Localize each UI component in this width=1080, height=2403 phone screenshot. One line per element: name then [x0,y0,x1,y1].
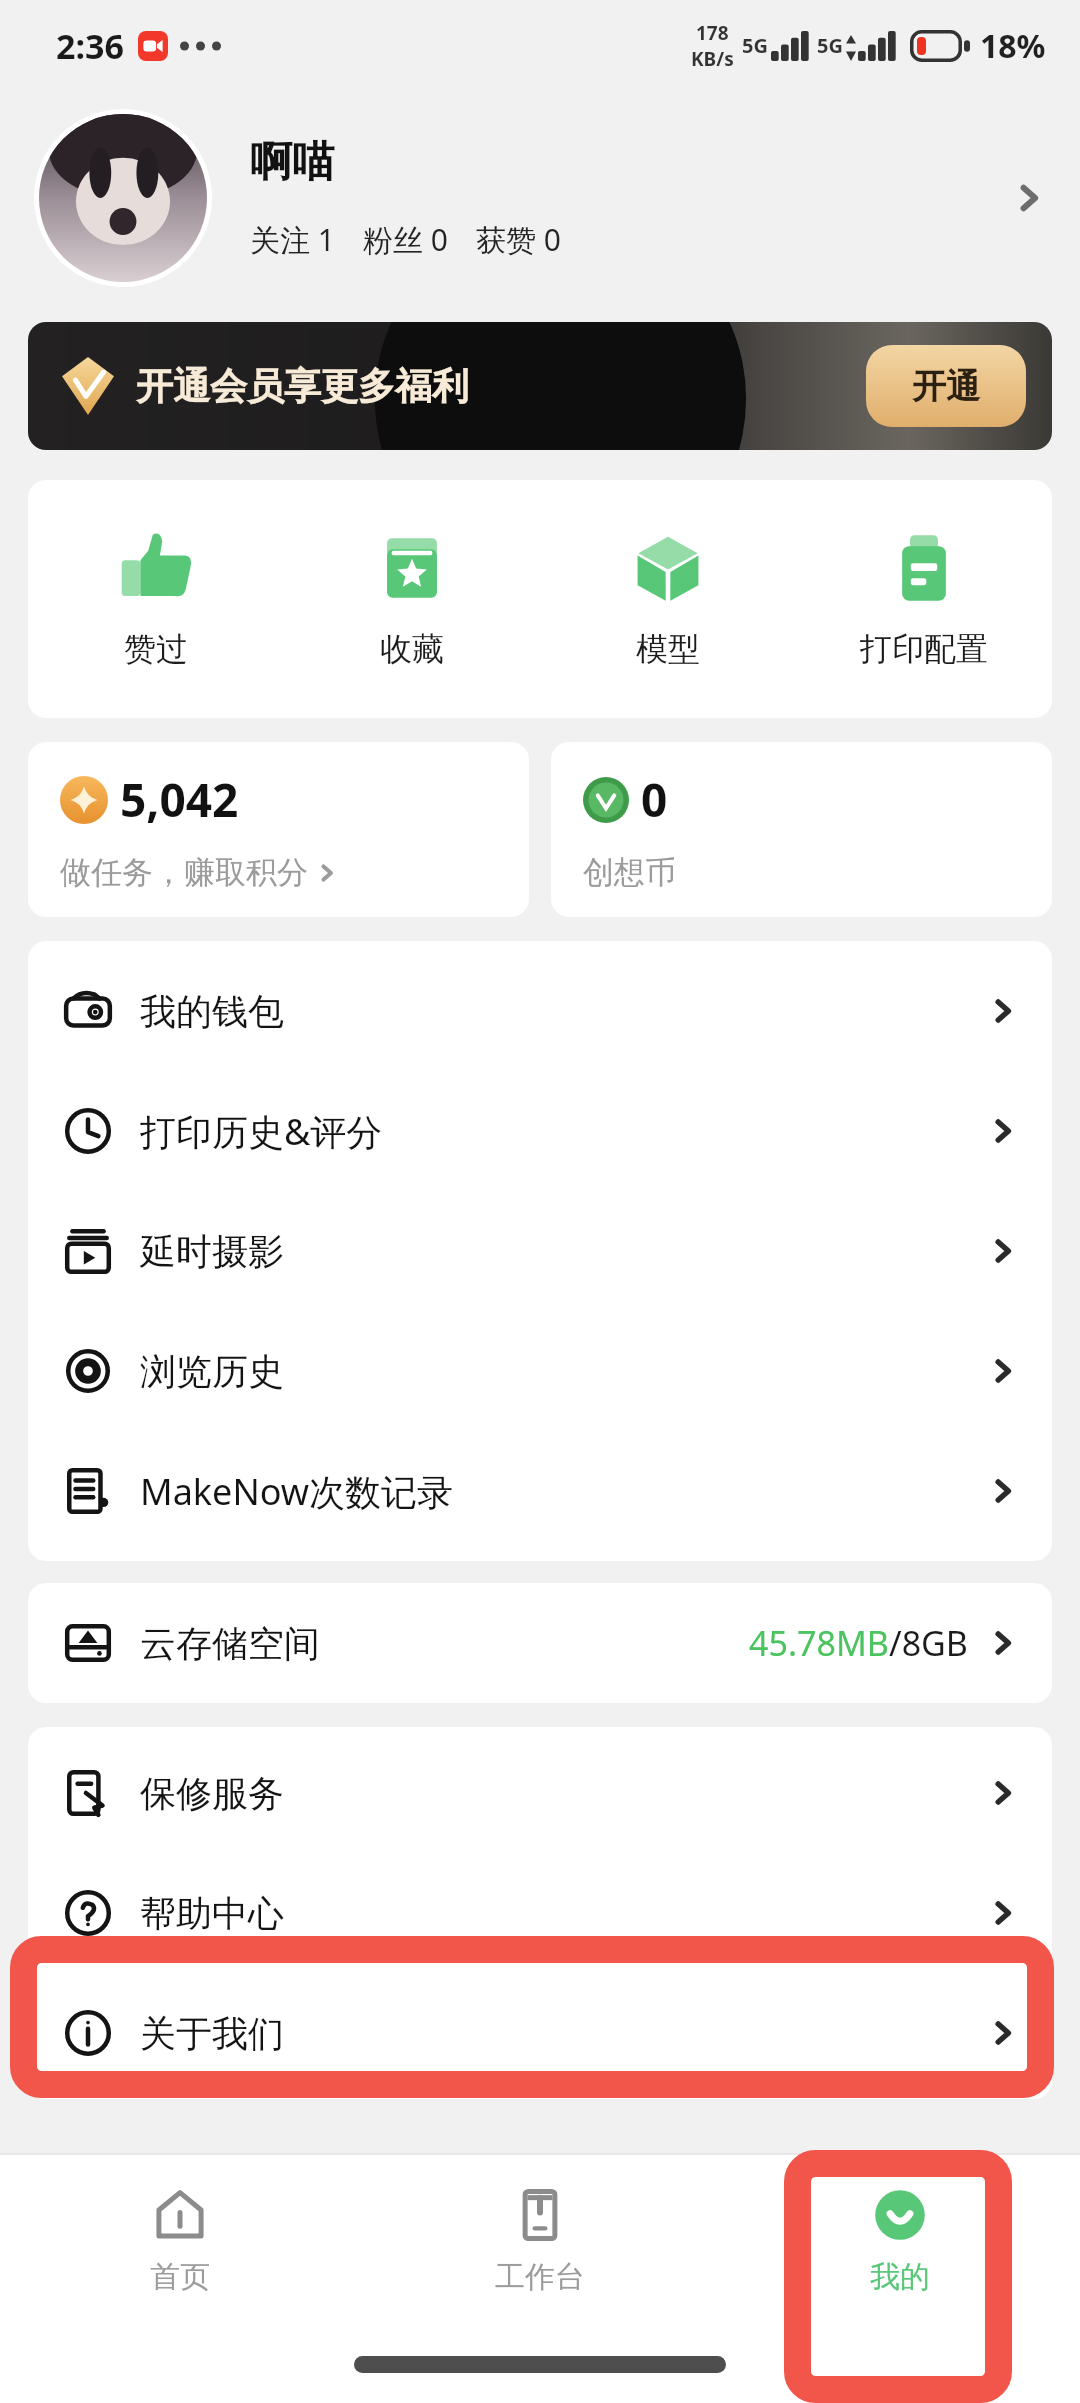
staticText: 我的 [870,2258,930,2296]
button[interactable]: 我的 [720,2155,1080,2325]
button[interactable]: 我的钱包 [28,951,1052,1071]
staticText: 5G [817,32,843,59]
button[interactable]: 0 [551,742,1052,917]
staticText: 178 [696,20,729,46]
button[interactable]: 帮助中心 [28,1853,1052,1973]
staticText: 45.78MB [749,1620,889,1666]
staticText: 工作台 [495,2258,585,2296]
staticText: MakeNow次数记录 [140,1467,454,1516]
staticText: 延时摄影 [140,1229,284,1274]
staticText: 首页 [150,2258,210,2296]
button[interactable]: 5,042 [28,742,529,917]
button[interactable]: 赞过 [28,480,284,718]
staticText: 打印配置 [860,629,988,669]
staticText: 5,042 [120,768,239,831]
staticText: 粉丝 0 [363,219,448,260]
staticText: 关注 1 [250,219,335,260]
button[interactable]: 开通 [866,345,1026,427]
button[interactable]: 收藏 [284,480,540,718]
staticText: 18% [980,24,1046,68]
button[interactable]: 延时摄影 [28,1191,1052,1311]
button[interactable]: 云存储空间 [28,1583,1052,1703]
staticText: /8GB [889,1620,968,1666]
staticText: 啊喵 [250,136,334,189]
staticText: 2:36 [56,23,124,69]
staticText: 云存储空间 [140,1621,320,1666]
staticText: 创想币 [583,853,676,892]
staticText: 打印历史&评分 [140,1107,383,1156]
staticText: 浏览历史 [140,1349,284,1394]
staticText: 开通 [912,365,980,408]
staticText: 收藏 [380,629,444,669]
staticText: 赞过 [124,629,188,669]
button[interactable]: 工作台 [360,2155,720,2325]
button[interactable]: 模型 [540,480,796,718]
button[interactable]: 浏览历史 [28,1311,1052,1431]
staticText: 保修服务 [140,1771,284,1816]
staticText: 获赞 0 [476,219,561,260]
staticText: 帮助中心 [140,1891,284,1936]
staticText: 开通会员享更多福利 [136,363,469,410]
button[interactable]: 打印配置 [796,480,1052,718]
staticText: KB/s [691,46,734,72]
staticText: 关于我们 [140,2011,284,2056]
button[interactable]: 首页 [0,2155,360,2325]
button[interactable]: 打印历史&评分 [28,1071,1052,1191]
staticText: 做任务，赚取积分 [60,853,308,892]
staticText: 模型 [636,629,700,669]
staticText: 0 [641,768,668,831]
staticText: 我的钱包 [140,989,284,1034]
staticText: 5G [742,32,768,59]
button[interactable]: 开通会员享更多福利 [28,322,1052,450]
button[interactable]: 啊喵 [0,92,1080,304]
button[interactable]: 保修服务 [28,1733,1052,1853]
button[interactable]: 关于我们 [28,1973,1052,2093]
button[interactable]: MakeNow次数记录 [28,1431,1052,1551]
